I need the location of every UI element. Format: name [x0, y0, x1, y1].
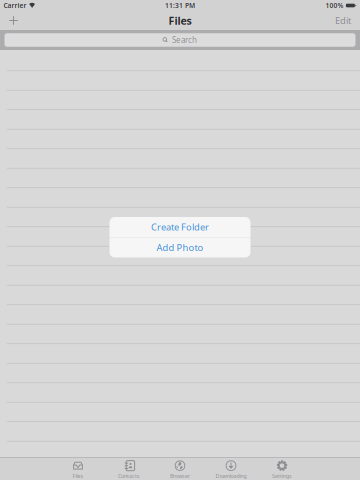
button[interactable]: Add [0, 11, 27, 30]
staticText: Browser [170, 472, 190, 479]
staticText: Edit [335, 14, 351, 27]
staticText: Create Folder [151, 221, 209, 233]
button[interactable]: Edit [318, 11, 351, 30]
staticText: Search [172, 35, 197, 45]
staticText: Downloading [215, 472, 246, 479]
button[interactable]: Contacts [103, 457, 154, 480]
staticText: 11:31 PM [165, 1, 195, 10]
staticText: Add Photo [156, 241, 203, 254]
staticText: Files [168, 13, 191, 28]
staticText: Carrier [3, 1, 26, 10]
staticText: Contacts [118, 472, 140, 479]
staticText: Files [72, 472, 83, 479]
staticText: 100% [325, 1, 343, 10]
button[interactable]: Browser [154, 457, 205, 480]
staticText: Settings [272, 472, 292, 479]
button[interactable]: Create Folder [109, 217, 250, 237]
button[interactable]: Downloading [205, 457, 256, 480]
button[interactable]: Files [52, 457, 103, 480]
button[interactable]: Settings [256, 457, 307, 480]
button[interactable]: Add Photo [109, 237, 250, 257]
